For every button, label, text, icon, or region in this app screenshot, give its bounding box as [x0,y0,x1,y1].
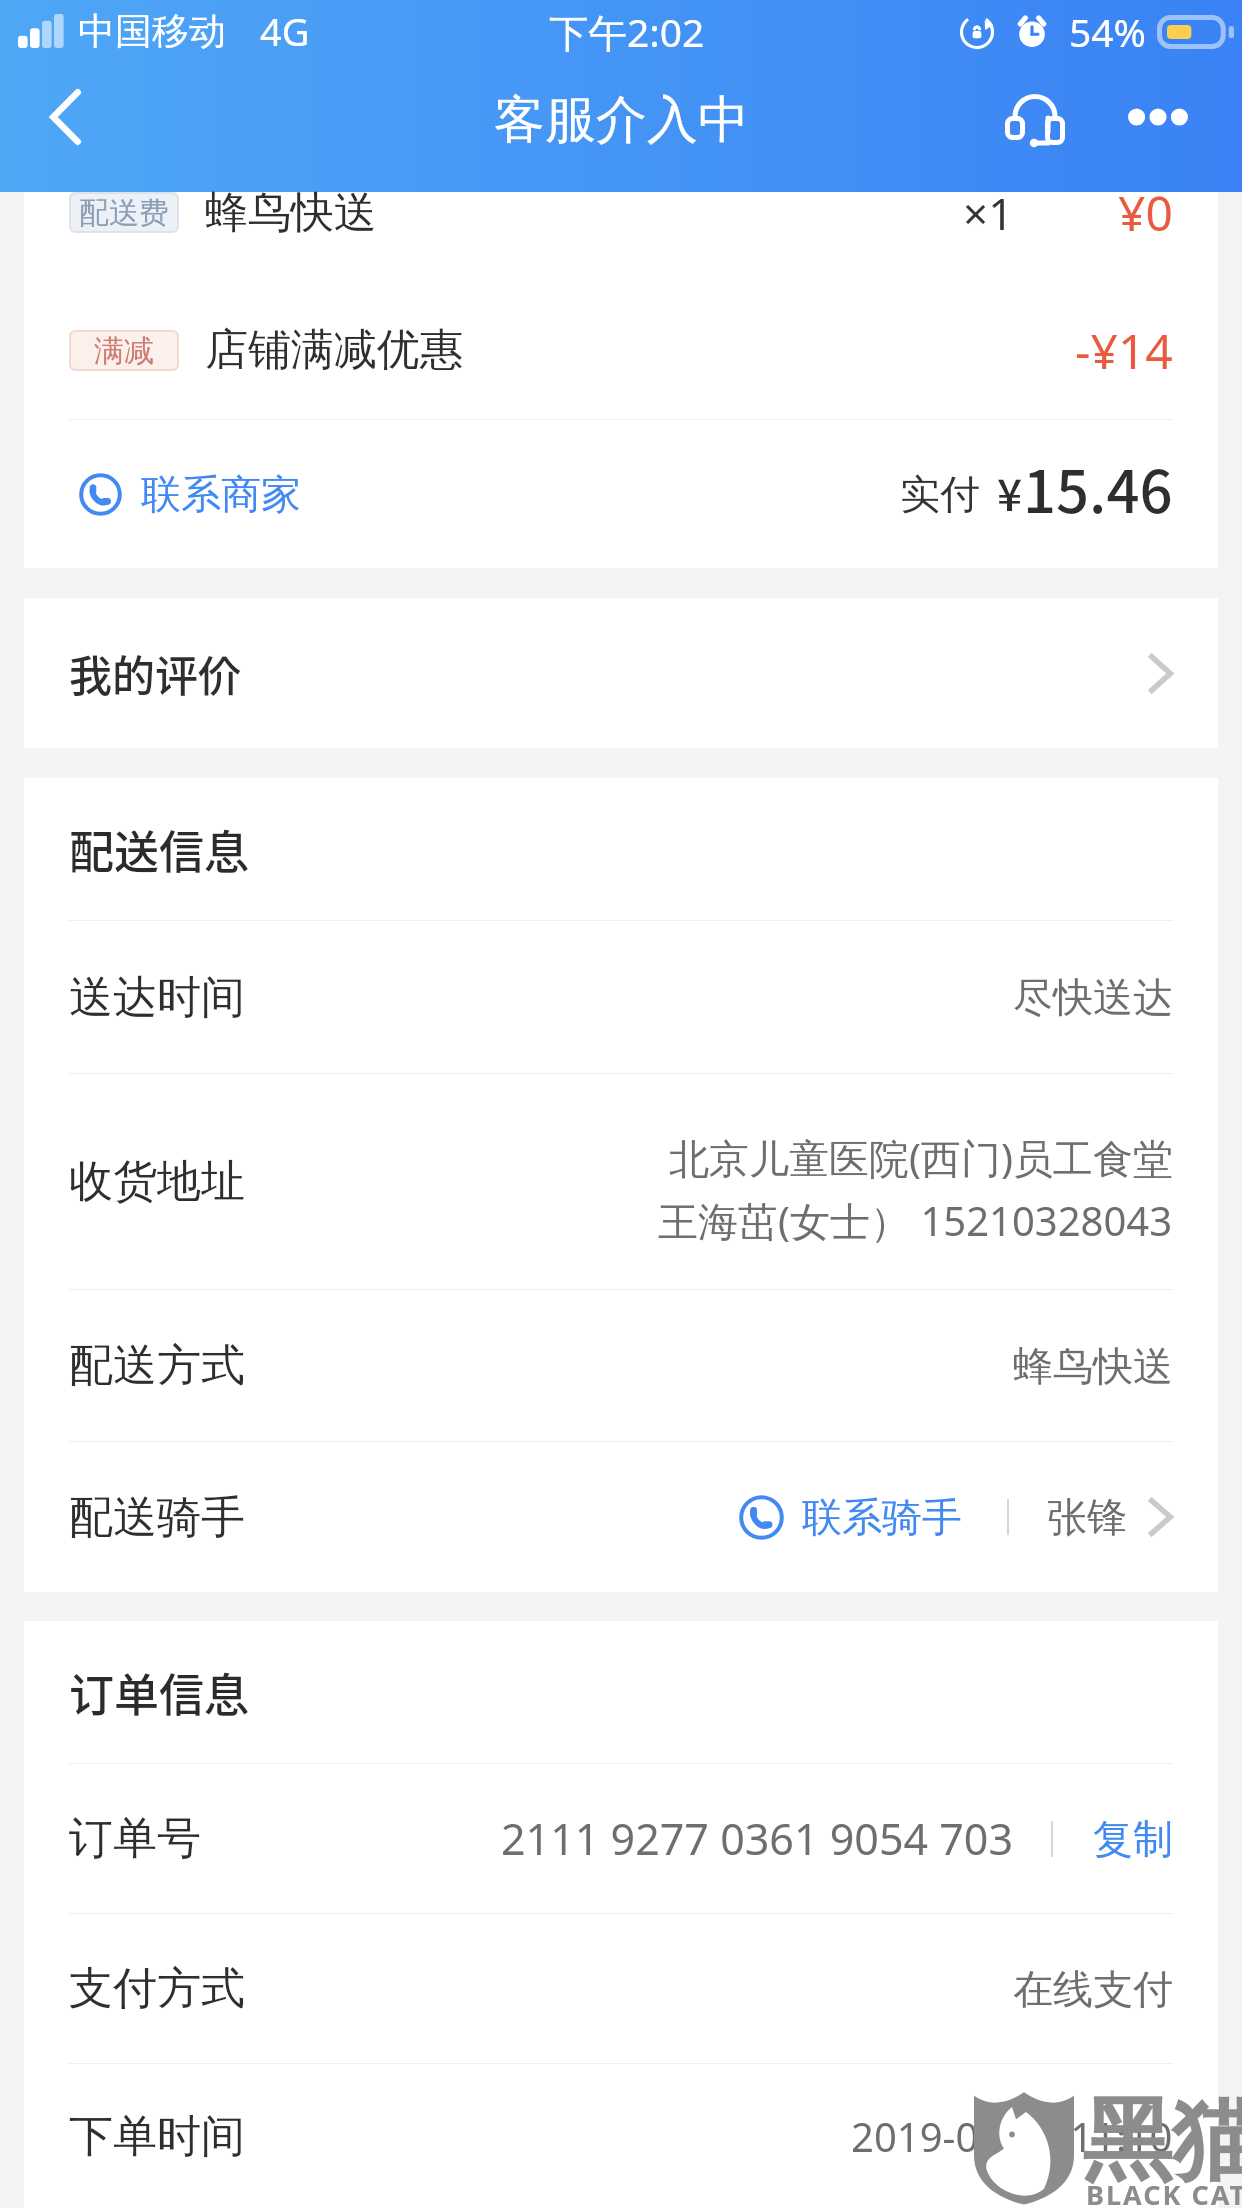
staticText: 王海茁(女士） 15210328043 [658,1193,1173,1248]
staticText: 复制 [1093,1814,1173,1864]
staticText: 配送骑手 [69,1490,245,1545]
staticText: 配送费 [79,194,169,232]
staticText: 订单信息 [69,1660,250,1725]
staticText: 客服介入中 [494,88,749,152]
button[interactable]: More options [1110,69,1206,165]
staticText: 54% [1069,5,1147,58]
staticText: 4G [260,5,310,57]
staticText: 在线支付 [1013,1964,1173,2014]
staticText: 我的评价 [69,642,241,704]
staticText: 配送信息 [69,817,250,882]
staticText: BLACK CAT [1086,2176,1242,2208]
button[interactable]: 联系骑手 [739,1476,962,1558]
staticText: -¥14 [1075,318,1173,383]
button[interactable]: 张锋 [1009,1476,1173,1558]
button[interactable]: 复制 [1093,1798,1173,1880]
staticText: 收货地址 [69,1154,245,1209]
staticText: 联系商家 [141,469,301,519]
staticText: 订单号 [69,1811,201,1866]
staticText: 配送方式 [69,1338,245,1393]
staticText: 送达时间 [69,970,245,1025]
staticText: 黑猫 [1082,2084,1242,2197]
staticText: 满减 [94,332,154,370]
staticText: 张锋 [1047,1492,1127,1542]
button[interactable]: Back [17,69,113,165]
button[interactable]: 联系商家 [69,451,311,537]
staticText: 店铺满减优惠 [205,323,463,377]
staticText: 蜂鸟快送 [1013,1341,1173,1391]
staticText: 实付 [900,469,980,519]
staticText: 蜂鸟快送 [205,186,377,240]
staticText: 联系骑手 [802,1492,962,1542]
staticText: 中国移动 [78,8,226,55]
staticText: 2111 9277 0361 9054 703 [501,1809,1014,1868]
staticText: 尽快送达 [1013,972,1173,1022]
staticText: ¥ [997,460,1023,524]
staticText: 下午2:02 [549,5,705,58]
staticText: ¥0 [1118,180,1173,245]
staticText: ×1 [963,183,1014,243]
staticText: 下单时间 [69,2109,245,2164]
button[interactable]: Customer service [987,69,1083,165]
staticText: 支付方式 [69,1961,245,2016]
staticText: 15.46 [1023,446,1173,530]
button[interactable]: 我的评价 [24,598,1218,748]
staticText: 2019-07-18 11:10 [851,2109,1173,2163]
staticText: 北京儿童医院(西门)员工食堂 [669,1130,1173,1185]
